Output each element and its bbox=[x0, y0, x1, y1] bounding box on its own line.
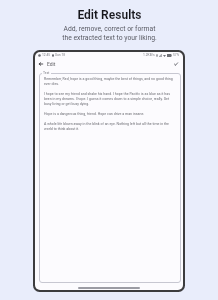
staticText: 12:45 bbox=[42, 53, 51, 57]
button[interactable]: Save bbox=[171, 59, 180, 68]
staticText: 57% bbox=[173, 53, 180, 57]
staticText: Add, remove, correct or format the extra… bbox=[62, 25, 157, 41]
staticText: Text bbox=[43, 71, 50, 75]
staticText: Remember, Red, hope is a good thing, may… bbox=[44, 77, 176, 131]
staticText: Edit bbox=[47, 61, 56, 67]
staticText: Edit Results bbox=[77, 8, 142, 22]
staticText: Sun 18 bbox=[55, 53, 66, 57]
staticText: 1.2KB/s bbox=[143, 53, 155, 57]
button[interactable]: Back bbox=[36, 59, 45, 68]
